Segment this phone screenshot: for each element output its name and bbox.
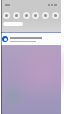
button[interactable]: Quick setting 3 <box>32 12 39 19</box>
button[interactable]: Quick setting 1 <box>13 12 20 19</box>
button[interactable] <box>1 33 61 45</box>
button[interactable]: Quick setting 5 <box>52 12 59 19</box>
button[interactable]: Quick setting 0 <box>3 12 10 19</box>
button[interactable]: Brightness <box>3 22 23 26</box>
button[interactable]: Quick setting 2 <box>23 12 30 19</box>
button[interactable]: Quick setting 4 <box>42 12 49 19</box>
